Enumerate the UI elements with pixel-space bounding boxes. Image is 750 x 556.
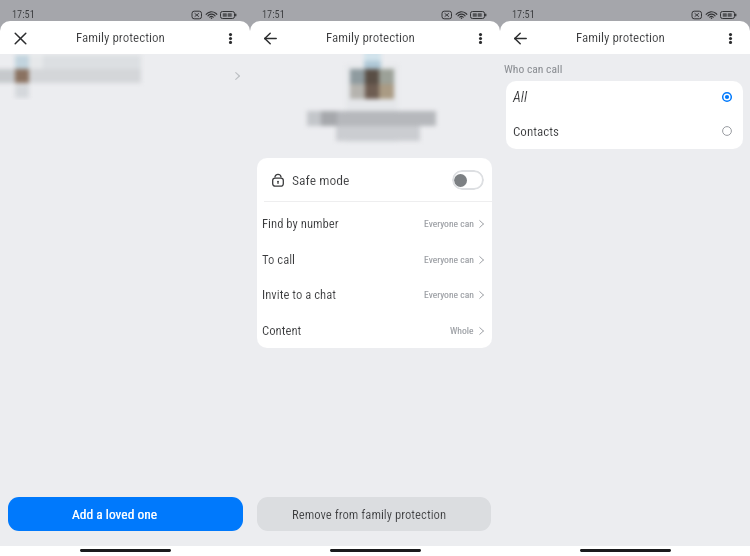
staticText: Safe mode (292, 172, 350, 188)
staticText: 17:51 (262, 8, 285, 20)
button[interactable]: All (506, 81, 743, 113)
staticText: 17:51 (12, 8, 35, 20)
button[interactable]: Back (259, 27, 281, 49)
button[interactable]: Safe mode (257, 158, 492, 201)
button[interactable]: Contacts (506, 113, 743, 149)
button[interactable]: Open family member (0, 54, 250, 100)
staticText: 17:51 (512, 8, 535, 20)
staticText: Remove from family protection (292, 507, 447, 522)
staticText: Contacts (513, 124, 560, 139)
staticText: Who can call (504, 62, 563, 76)
staticText: Whole (450, 325, 474, 336)
staticText: Family protection (576, 30, 665, 45)
button[interactable]: Content (257, 312, 492, 348)
staticText: Everyone can (424, 254, 474, 265)
button[interactable]: More options (719, 27, 741, 49)
button[interactable]: More options (469, 27, 491, 49)
staticText: Family protection (326, 30, 415, 45)
button[interactable]: Close (9, 27, 31, 49)
staticText: Everyone can (424, 289, 474, 300)
staticText: All (513, 89, 528, 105)
staticText: Add a loved one (72, 506, 158, 522)
button[interactable]: Safe mode toggle (452, 170, 484, 190)
button[interactable]: Add a loved one (8, 497, 243, 531)
staticText: To call (262, 252, 296, 267)
staticText: Family protection (76, 30, 165, 45)
button[interactable]: Back (509, 27, 531, 49)
staticText: Find by number (262, 216, 339, 231)
button[interactable]: Remove from family protection (257, 497, 491, 531)
button[interactable]: More options (219, 27, 241, 49)
button[interactable]: Invite to a chat (257, 277, 492, 312)
button[interactable]: Find by number (257, 206, 492, 241)
button[interactable]: To call (257, 241, 492, 277)
staticText: Invite to a chat (262, 287, 336, 302)
staticText: Content (262, 323, 302, 338)
staticText: Everyone can (424, 218, 474, 229)
